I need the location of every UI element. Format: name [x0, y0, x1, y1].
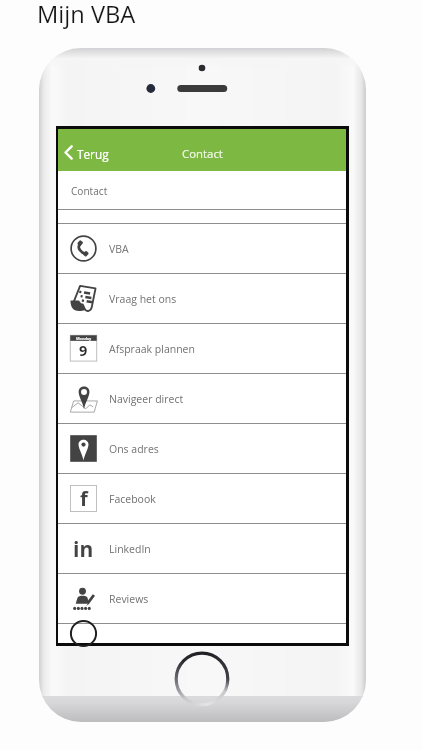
staticText: VBA — [109, 242, 129, 256]
staticText: Monday — [76, 336, 92, 341]
button[interactable]: f — [58, 474, 346, 523]
button[interactable]: in — [58, 524, 346, 573]
button[interactable]: Monday — [58, 324, 346, 373]
staticText: Reviews — [109, 592, 149, 606]
staticText: Afspraak plannen — [109, 342, 195, 356]
staticText: f — [80, 485, 88, 512]
staticText: LinkedIn — [109, 542, 151, 556]
button[interactable]: More options — [58, 624, 346, 643]
button[interactable]: Vraag het ons — [58, 274, 346, 323]
staticText: Vraag het ons — [109, 292, 177, 306]
staticText: Navigeer direct — [109, 392, 184, 406]
staticText: in — [73, 535, 94, 562]
staticText: Ons adres — [109, 442, 159, 456]
staticText: Facebook — [109, 492, 156, 506]
staticText: 9 — [79, 341, 88, 361]
button[interactable]: VBA — [58, 224, 346, 273]
staticText: Terug — [77, 146, 109, 162]
staticText: Contact — [71, 184, 108, 198]
button[interactable]: Ons adres — [58, 424, 346, 473]
button[interactable]: Navigeer direct — [58, 374, 346, 423]
staticText: Mijn VBA — [37, 0, 136, 30]
button[interactable]: Reviews — [58, 574, 346, 623]
button[interactable]: Terug — [64, 145, 346, 171]
button[interactable]: Contact — [58, 171, 346, 209]
staticText: Contact — [182, 146, 223, 162]
